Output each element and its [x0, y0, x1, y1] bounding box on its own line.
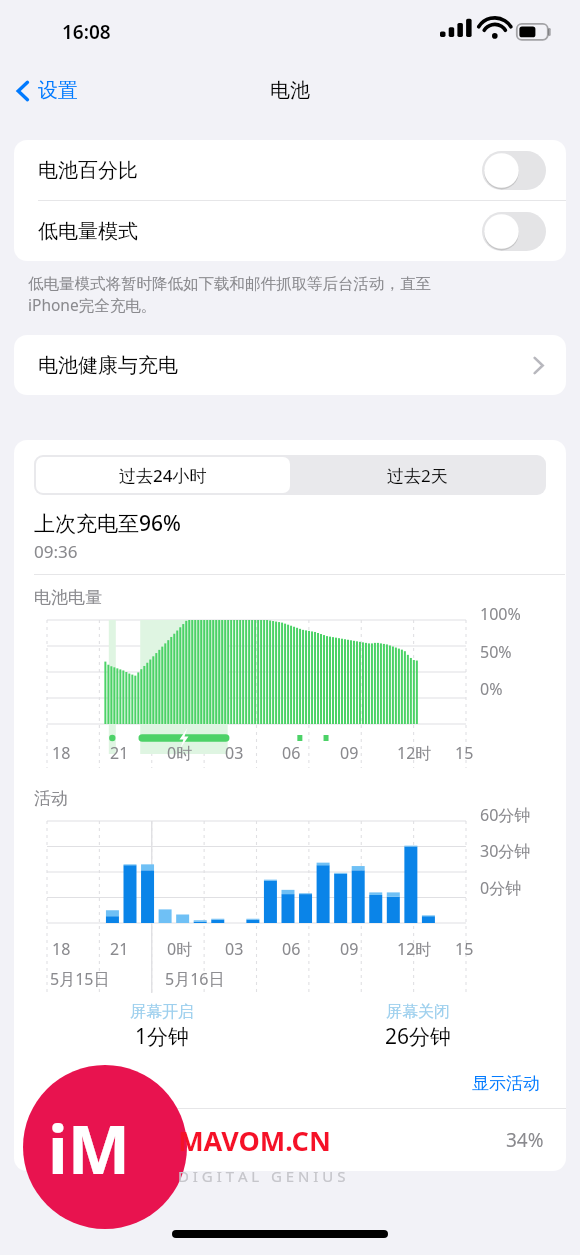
- staticText: MAVOM.CN: [178, 1122, 331, 1159]
- staticText: iM: [48, 1103, 130, 1193]
- staticText: 03: [225, 742, 244, 764]
- staticText: 06: [282, 938, 301, 960]
- staticText: 设置: [38, 78, 78, 103]
- staticText: 16:08: [62, 19, 111, 45]
- staticText: D I G I T A L G E N I U S: [178, 1166, 346, 1186]
- button[interactable]: 设置: [0, 72, 88, 109]
- staticText: 显示活动: [472, 1073, 540, 1094]
- staticText: 屏幕开启: [130, 1002, 194, 1022]
- staticText: 过去2天: [387, 464, 448, 487]
- staticText: 21: [110, 742, 129, 764]
- button[interactable]: 过去24小时: [36, 457, 290, 493]
- button[interactable]: 微信: [14, 1109, 566, 1171]
- staticText: 09:36: [34, 540, 78, 563]
- staticText: 屏幕关闭: [386, 1002, 450, 1022]
- staticText: 0%: [480, 678, 503, 700]
- staticText: 0时: [167, 938, 193, 960]
- staticText: 15: [455, 742, 474, 764]
- staticText: 12时: [397, 742, 432, 764]
- staticText: 上次充电至96%: [34, 509, 181, 538]
- staticText: 微信: [80, 1128, 118, 1152]
- button[interactable]: 低电量模式: [482, 212, 546, 251]
- staticText: 电池健康与充电: [38, 353, 178, 378]
- staticText: 06: [282, 742, 301, 764]
- staticText: 21: [110, 938, 129, 960]
- staticText: 5月16日: [165, 968, 225, 990]
- button[interactable]: 电池百分比: [482, 151, 546, 190]
- staticText: 15: [455, 938, 474, 960]
- staticText: 34%: [506, 1127, 544, 1153]
- button[interactable]: 电池百分比: [14, 140, 566, 200]
- staticText: 100%: [480, 603, 521, 625]
- button[interactable]: 过去2天: [290, 457, 544, 493]
- staticText: 60分钟: [480, 804, 531, 826]
- staticText: 30分钟: [480, 840, 531, 862]
- button[interactable]: 电池健康与充电: [14, 335, 566, 395]
- staticText: 18: [52, 938, 71, 960]
- staticText: 18: [52, 742, 71, 764]
- staticText: 低电量模式将暂时降低如下载和邮件抓取等后台活动，直至 iPhone完全充电。: [28, 274, 431, 316]
- staticText: 5月15日: [50, 968, 110, 990]
- staticText: 09: [340, 742, 359, 764]
- staticText: 电池百分比: [38, 158, 138, 183]
- staticText: 电池: [270, 78, 310, 103]
- staticText: 电池电量: [34, 587, 102, 608]
- button[interactable]: 显示活动: [468, 1069, 544, 1098]
- staticText: 03: [225, 938, 244, 960]
- staticText: 50%: [480, 641, 512, 663]
- staticText: 26分钟: [385, 1022, 452, 1051]
- staticText: 过去24小时: [119, 464, 207, 487]
- staticText: 0分钟: [480, 877, 522, 899]
- staticText: 12时: [397, 938, 432, 960]
- staticText: 0时: [167, 742, 193, 764]
- button[interactable]: 低电量模式: [14, 201, 566, 261]
- staticText: 1分钟: [135, 1022, 190, 1051]
- staticText: 09: [340, 938, 359, 960]
- staticText: 低电量模式: [38, 219, 138, 244]
- staticText: 活动: [34, 788, 68, 809]
